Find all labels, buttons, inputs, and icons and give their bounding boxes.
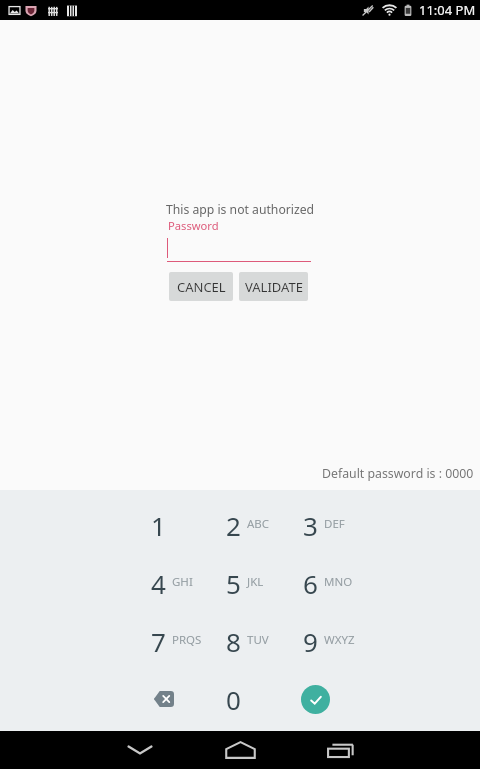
button[interactable]: 6 [277, 554, 354, 612]
button[interactable]: 9 [277, 612, 354, 670]
staticText: 4 [151, 566, 166, 601]
staticText: This app is not authorized [166, 201, 315, 218]
button[interactable]: Recent apps [290, 731, 390, 769]
button[interactable]: Password field [167, 234, 311, 263]
staticText: MNO [324, 574, 353, 590]
staticText: PRQS [172, 632, 202, 648]
staticText: 3 [303, 508, 318, 543]
staticText: 6 [303, 566, 318, 601]
button[interactable]: 4 [125, 554, 202, 612]
staticText: GHI [172, 574, 193, 590]
button[interactable]: CANCEL [169, 272, 233, 301]
button[interactable]: 7 [125, 612, 202, 670]
staticText: WXYZ [324, 632, 355, 648]
staticText: 2 [226, 508, 241, 543]
button[interactable]: 8 [200, 612, 277, 670]
button[interactable]: Delete [125, 670, 202, 728]
button[interactable]: 3 [277, 496, 354, 554]
staticText: 11:04 PM [419, 1, 476, 19]
button[interactable]: 1 [125, 496, 202, 554]
staticText: DEF [324, 516, 345, 532]
staticText: ABC [247, 516, 270, 532]
staticText: 5 [226, 566, 241, 601]
staticText: Default password is : 0000 [322, 465, 474, 482]
staticText: JKL [247, 574, 264, 590]
staticText: VALIDATE [245, 278, 303, 296]
button[interactable]: Back [90, 731, 190, 769]
staticText: 9 [303, 624, 318, 659]
button[interactable]: Home [190, 731, 290, 769]
staticText: Password [168, 218, 219, 233]
staticText: TUV [247, 632, 269, 648]
staticText: 8 [226, 624, 241, 659]
button[interactable]: VALIDATE [239, 272, 308, 301]
button[interactable]: 0 [200, 670, 277, 728]
staticText: 7 [151, 624, 166, 659]
staticText: 1 [151, 508, 166, 543]
button[interactable]: Validate [277, 670, 354, 728]
staticText: 0 [226, 682, 241, 717]
button[interactable]: 5 [200, 554, 277, 612]
button[interactable]: 2 [200, 496, 277, 554]
staticText: CANCEL [177, 278, 226, 296]
